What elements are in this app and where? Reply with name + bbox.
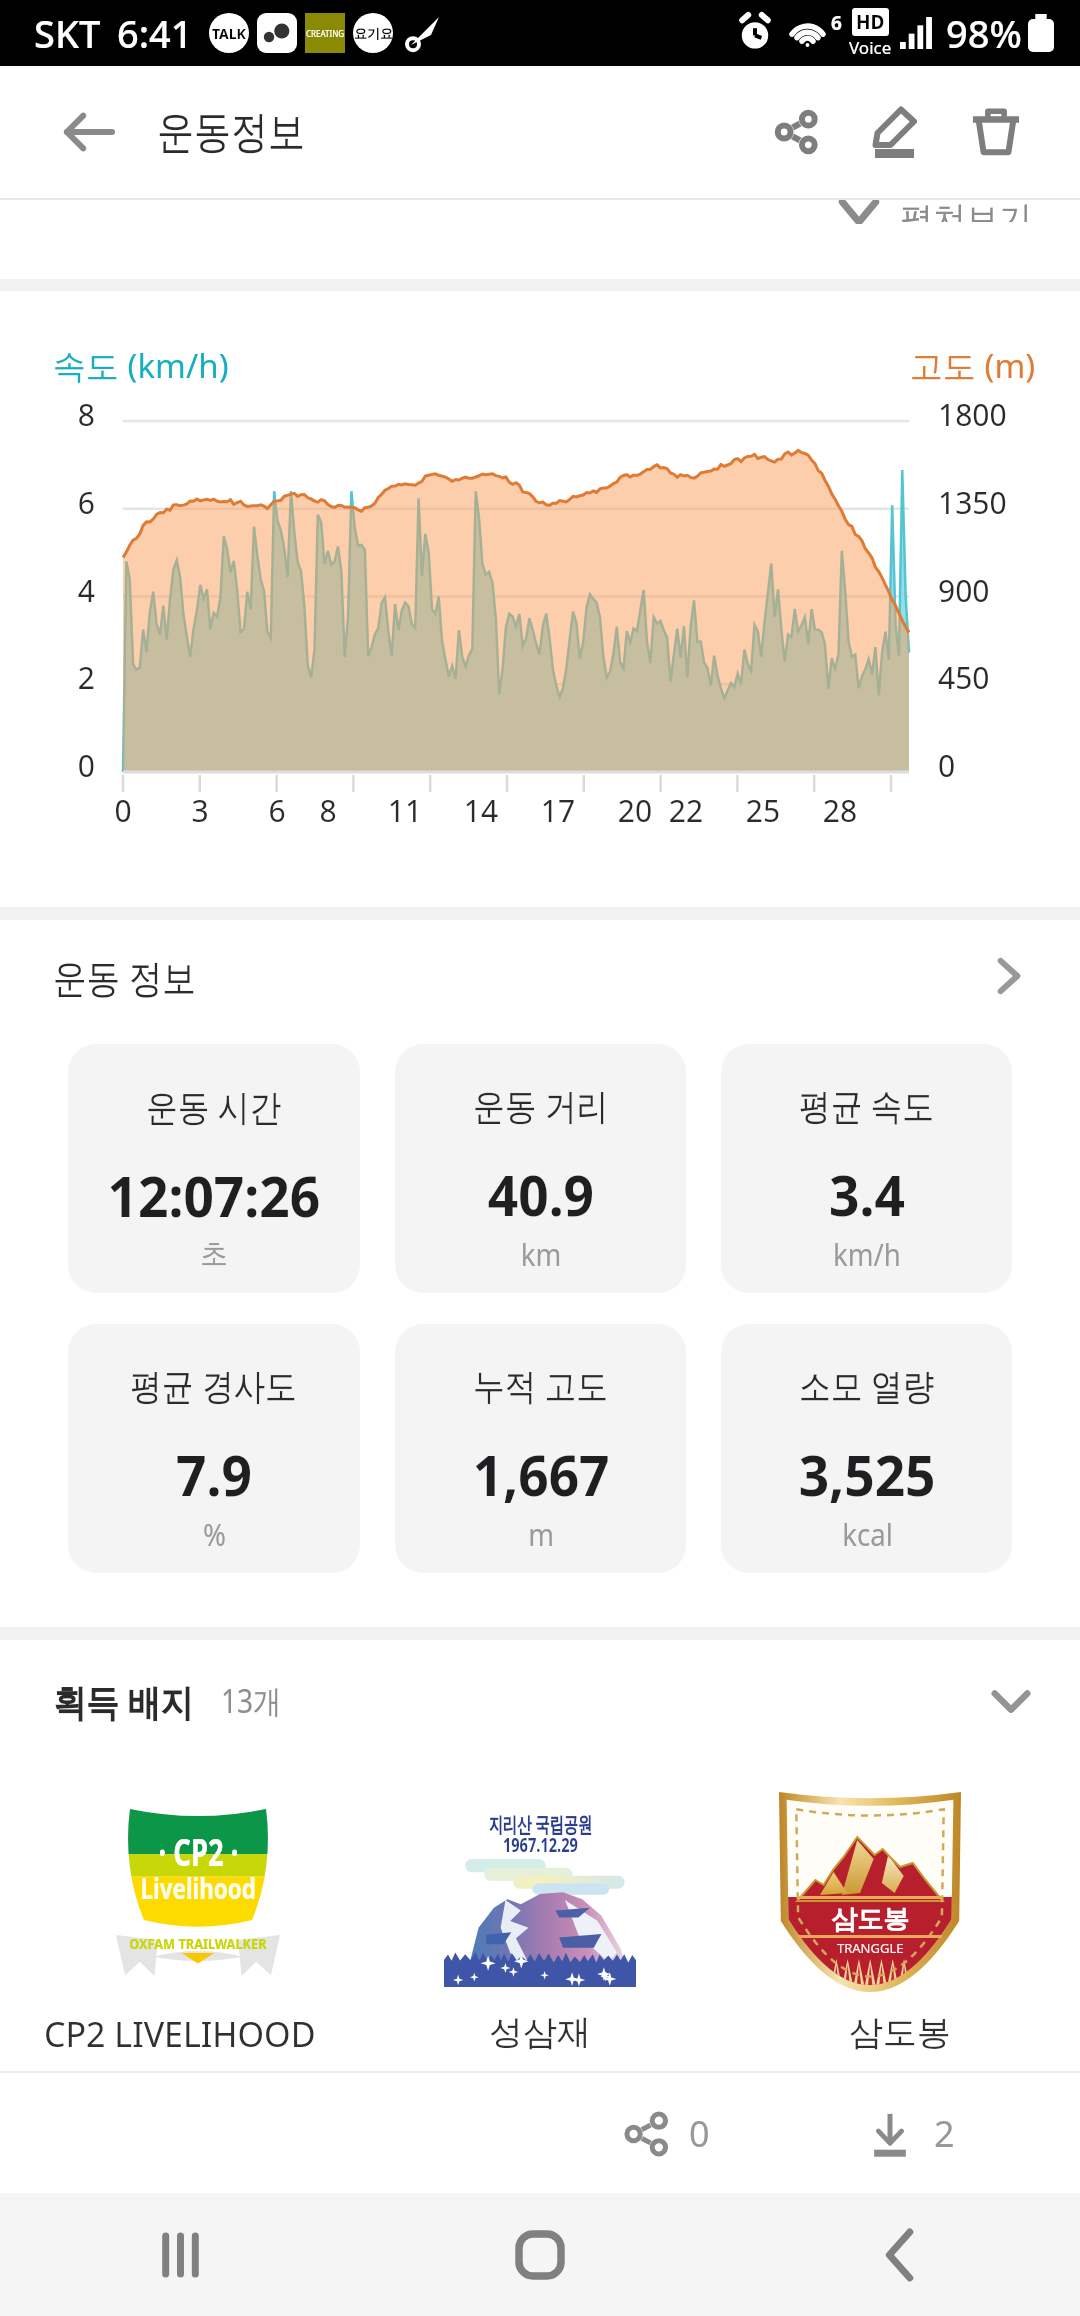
staticText: Livelihood <box>140 1869 256 1907</box>
staticText: 1967.12.29 <box>503 1831 578 1858</box>
button[interactable]: 누적 고도 <box>395 1324 686 1573</box>
staticText: 운동 시간 <box>146 1082 282 1131</box>
staticText: 17 <box>533 790 583 831</box>
staticText: 1,667 <box>473 1436 610 1512</box>
staticText: 요기요 <box>354 25 393 41</box>
staticText: 고도 (m) <box>910 343 1036 388</box>
staticText: 2 <box>934 2109 955 2158</box>
button[interactable]: 2 <box>856 2109 965 2158</box>
button[interactable]: Home <box>360 2193 720 2316</box>
staticText: 운동 정보 <box>53 950 197 1003</box>
staticText: 0 <box>98 790 148 831</box>
button[interactable]: 평균 경사도 <box>68 1324 360 1573</box>
staticText: 12:07:26 <box>108 1157 320 1233</box>
staticText: 13개 <box>221 1679 282 1723</box>
staticText: CP2 LIVELIHOOD <box>44 2011 316 2057</box>
staticText: 획득 배지 <box>53 1676 194 1727</box>
staticText: · CP2 · <box>158 1825 238 1877</box>
staticText: 22 <box>661 790 711 831</box>
staticText: 평균 속도 <box>799 1081 935 1130</box>
staticText: 운동정보 <box>157 105 305 160</box>
staticText: 8 <box>303 790 353 831</box>
button[interactable]: 삼도봉 <box>720 1762 1080 2071</box>
staticText: 450 <box>938 657 990 698</box>
staticText: km/h <box>833 1234 901 1275</box>
staticText: 소모 열량 <box>799 1361 935 1410</box>
staticText: 0 <box>938 745 956 786</box>
staticText: 운동 거리 <box>473 1081 609 1130</box>
staticText: 25 <box>738 790 788 831</box>
button[interactable]: Back <box>720 2193 1080 2316</box>
button[interactable]: 운동 시간 <box>68 1044 360 1293</box>
button[interactable]: Recents <box>0 2193 360 2316</box>
button[interactable]: 펼쳐보기 <box>840 200 1032 224</box>
button[interactable]: 운동 거리 <box>395 1044 686 1293</box>
button[interactable]: 획득 배지 <box>0 1640 1080 1762</box>
staticText: km <box>521 1234 562 1275</box>
staticText: 3 <box>175 790 225 831</box>
staticText: 3,525 <box>799 1436 936 1512</box>
staticText: SKT <box>34 7 101 59</box>
staticText: 속도 (km/h) <box>53 343 229 388</box>
staticText: 0 <box>55 745 95 786</box>
staticText: 0 <box>689 2109 710 2158</box>
staticText: 펼쳐보기 <box>900 200 1032 222</box>
staticText: HD <box>856 9 885 35</box>
staticText: 28 <box>815 790 865 831</box>
staticText: kcal <box>842 1514 893 1555</box>
button[interactable]: Back <box>0 66 178 198</box>
staticText: 2 <box>55 657 95 698</box>
staticText: 4 <box>55 570 95 611</box>
staticText: 98% <box>946 7 1022 59</box>
button[interactable]: Edit <box>846 82 946 182</box>
staticText: 40.9 <box>488 1156 594 1232</box>
staticText: TRANGGLE <box>837 1939 904 1957</box>
staticText: 평균 경사도 <box>130 1361 298 1410</box>
button[interactable]: 운동 정보 <box>0 920 1080 1044</box>
staticText: 삼도봉 <box>831 1903 909 1936</box>
staticText: 8 <box>55 394 95 435</box>
staticText: 1800 <box>938 394 1007 435</box>
button[interactable]: Share <box>746 82 846 182</box>
staticText: 14 <box>456 790 506 831</box>
staticText: OXFAM TRAILWALKER <box>129 1933 267 1953</box>
button[interactable]: 소모 열량 <box>721 1324 1012 1573</box>
staticText: TALK <box>212 24 246 43</box>
staticText: 삼도봉 <box>849 2011 951 2054</box>
staticText: 누적 고도 <box>473 1361 609 1410</box>
staticText: 6 <box>55 482 95 523</box>
staticText: % <box>203 1514 226 1555</box>
staticText: 20 <box>610 790 660 831</box>
staticText: Voice <box>849 36 892 59</box>
staticText: 6:41 <box>117 7 193 59</box>
staticText: 성삼재 <box>489 2011 591 2054</box>
staticText: 6 <box>831 10 842 36</box>
staticText: 3.4 <box>829 1156 905 1232</box>
button[interactable]: 지리산 국립공원 <box>360 1762 720 2071</box>
button[interactable]: 0 <box>613 2109 720 2158</box>
button[interactable]: 평균 속도 <box>721 1044 1012 1293</box>
staticText: 초 <box>200 1235 228 1273</box>
staticText: 900 <box>938 570 990 611</box>
staticText: 7.9 <box>176 1436 252 1512</box>
staticText: 지리산 국립공원 <box>488 1810 592 1839</box>
staticText: m <box>528 1514 555 1555</box>
button[interactable]: · CP2 · <box>0 1762 360 2071</box>
button[interactable]: Delete <box>946 82 1046 182</box>
staticText: CREATING <box>306 28 345 39</box>
staticText: 1350 <box>938 482 1007 523</box>
staticText: 11 <box>380 790 430 831</box>
staticText: 6 <box>252 790 302 831</box>
